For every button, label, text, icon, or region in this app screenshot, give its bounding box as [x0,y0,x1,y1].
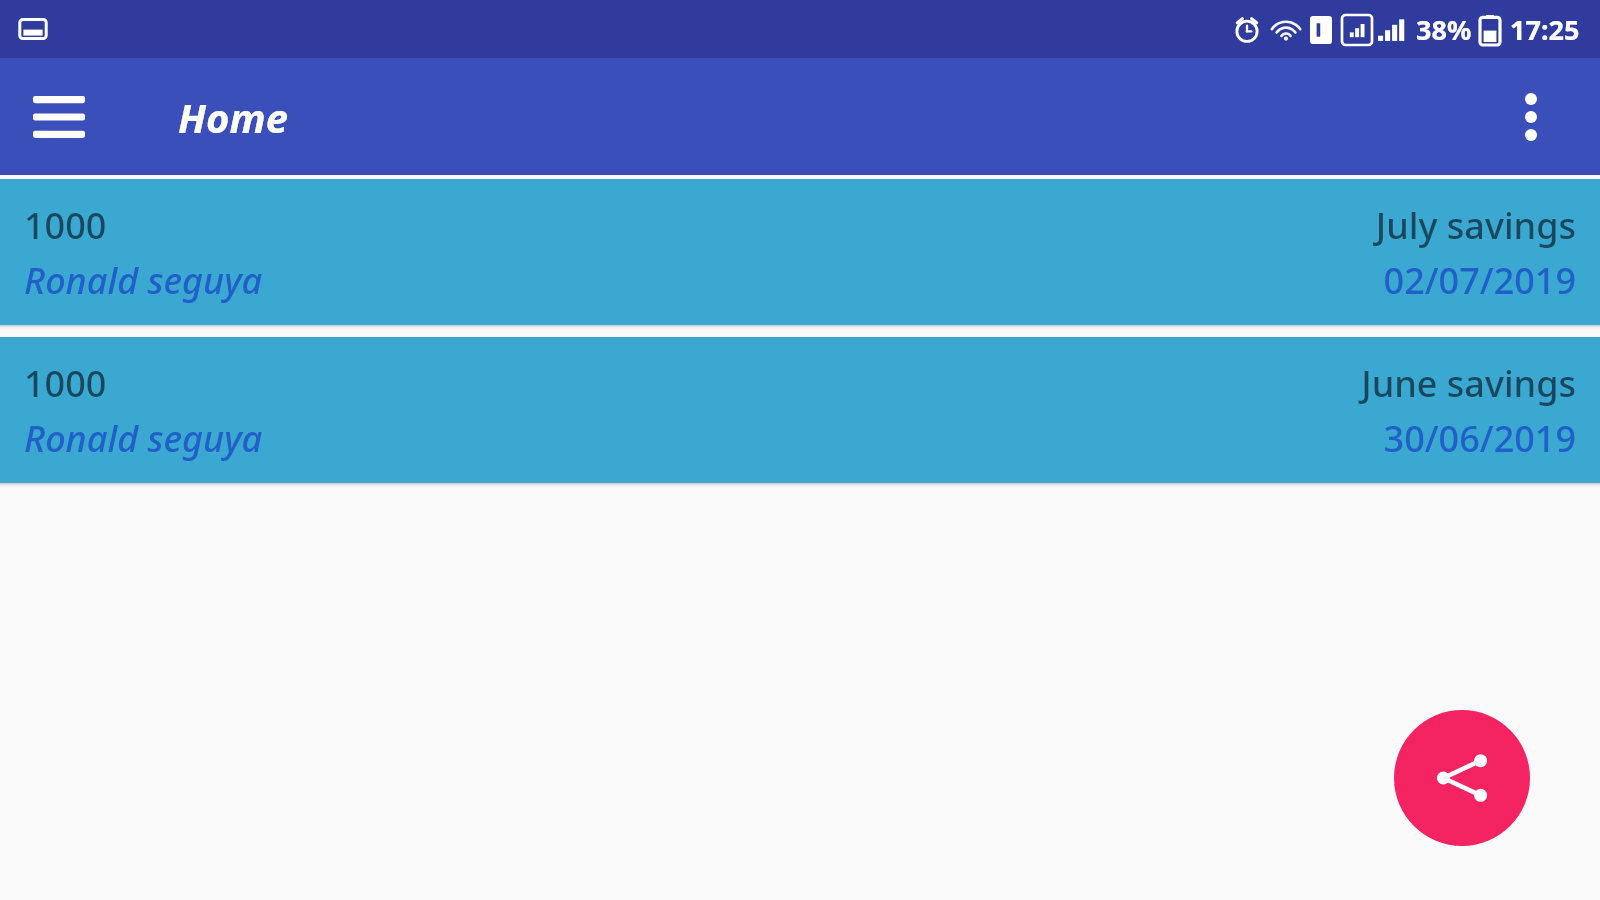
staticText: 1000 [24,201,107,250]
staticText: June savings [1361,359,1576,408]
staticText: Ronald seguya [24,414,263,463]
staticText: 30/06/2019 [1383,414,1576,463]
staticText: Ronald seguya [24,256,263,305]
staticText: 1000 [24,359,107,408]
staticText: July savings [1375,201,1576,250]
button[interactable]: 1000 [0,179,1600,325]
staticText: Home [178,90,288,144]
button[interactable]: Share [1394,710,1530,846]
staticText: 38% [1416,11,1472,48]
button[interactable]: Open navigation drawer [22,80,96,154]
button[interactable]: 1000 [0,337,1600,483]
staticText: 02/07/2019 [1383,256,1576,305]
staticText: 17:25 [1510,11,1580,48]
button[interactable]: More options [1500,86,1562,148]
